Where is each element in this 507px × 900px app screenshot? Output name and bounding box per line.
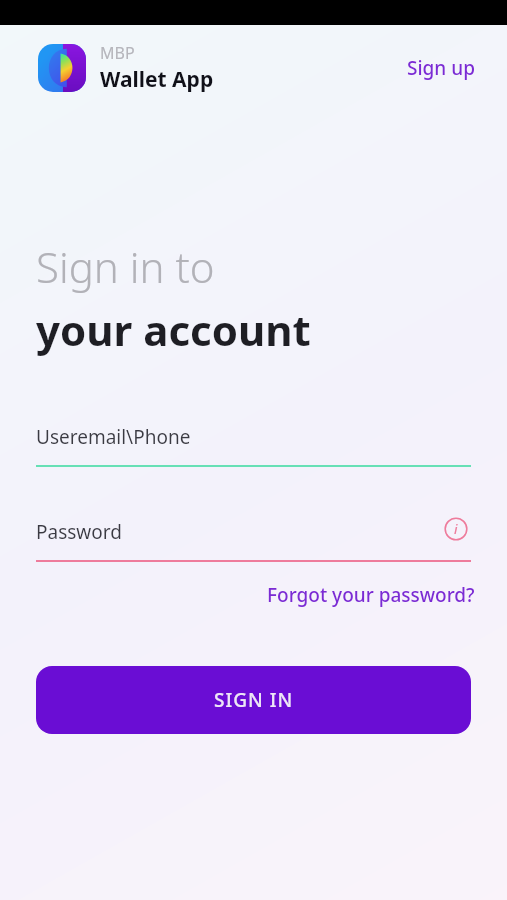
- staticText: your account: [36, 301, 311, 358]
- staticText: i: [454, 520, 458, 538]
- button[interactable]: Forgot your password?: [261, 578, 481, 612]
- button[interactable]: Password info: [441, 514, 471, 544]
- staticText: SIGN IN: [214, 687, 294, 713]
- other: MBP Wallet App logo: [38, 44, 86, 92]
- staticText: Useremail\Phone: [36, 424, 191, 450]
- button[interactable]: Sign up: [397, 49, 485, 87]
- button[interactable]: Useremail\Phone: [36, 420, 471, 467]
- staticText: Password: [36, 519, 122, 545]
- staticText: Forgot your password?: [267, 582, 475, 608]
- button[interactable]: SIGN IN: [36, 666, 471, 734]
- button[interactable]: Password: [36, 515, 471, 562]
- staticText: Sign in to: [36, 238, 215, 295]
- staticText: Sign up: [407, 55, 475, 81]
- staticText: MBP: [100, 42, 135, 64]
- staticText: Wallet App: [100, 65, 214, 94]
